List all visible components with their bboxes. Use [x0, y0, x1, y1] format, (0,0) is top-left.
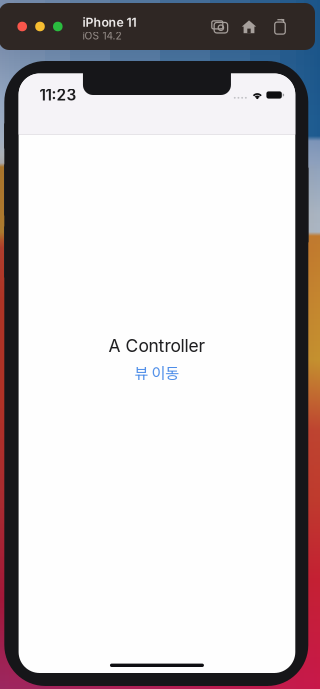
- button[interactable]: Screenshot: [211, 19, 228, 34]
- button[interactable]: 뷰 이동: [134, 361, 179, 383]
- staticText: iPhone 11: [83, 15, 137, 30]
- button[interactable]: Close: [17, 22, 27, 31]
- staticText: 뷰 이동: [134, 361, 179, 383]
- staticText: 11:23: [40, 86, 77, 104]
- staticText: A Controller: [108, 335, 205, 356]
- staticText: iOS 14.2: [83, 30, 122, 42]
- button[interactable]: Minimize: [35, 22, 45, 31]
- button[interactable]: Zoom: [53, 22, 63, 31]
- button[interactable]: Home: [241, 19, 257, 34]
- button[interactable]: Rotate device: [273, 18, 287, 34]
